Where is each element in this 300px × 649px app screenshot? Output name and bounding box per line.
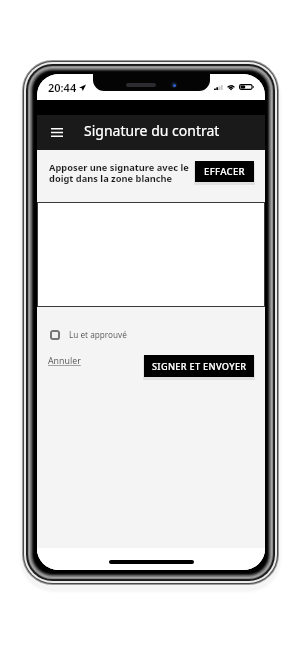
staticText: 20:44	[48, 80, 77, 95]
button[interactable]: Menu	[45, 120, 69, 144]
staticText: EFFACER	[204, 165, 245, 178]
staticText: SIGNER ET ENVOYER	[152, 360, 247, 373]
button[interactable]: SIGNER ET ENVOYER	[144, 355, 254, 377]
staticText: Apposer une signature avec le doigt dans…	[49, 161, 189, 185]
staticText: Lu et approuvé	[69, 329, 127, 340]
staticText: Annuler	[48, 355, 81, 367]
button[interactable]: EFFACER	[195, 161, 254, 182]
button[interactable]: Lu et approuvé	[50, 329, 127, 340]
button[interactable]: Annuler	[48, 355, 81, 367]
staticText: Signature du contrat	[84, 121, 220, 140]
